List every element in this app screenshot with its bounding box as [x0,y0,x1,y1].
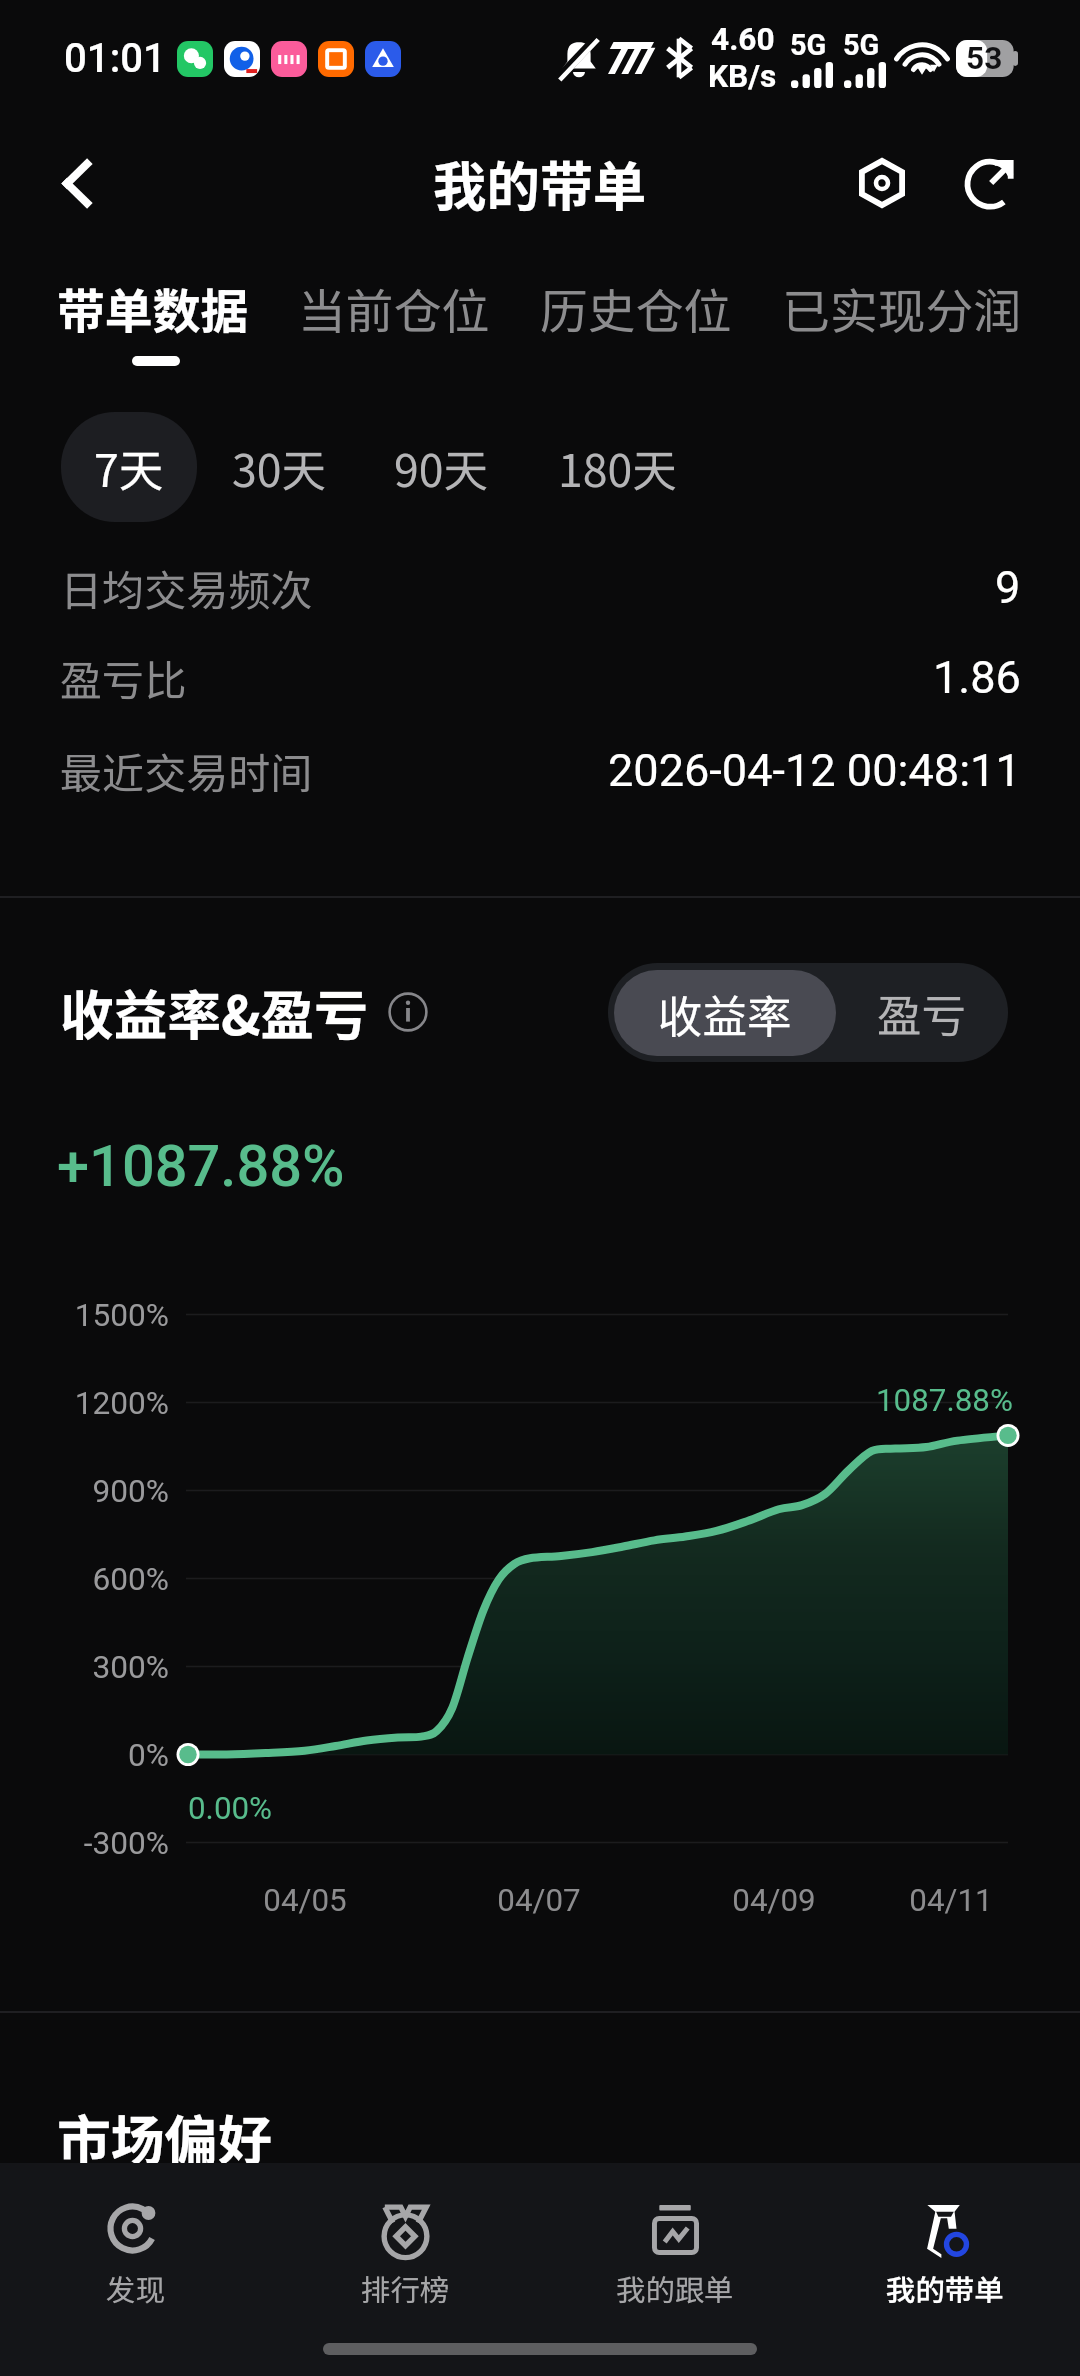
staticText: 日均交易频次 [60,557,313,618]
staticText: 180天 [558,435,677,500]
button[interactable]: 收益率 [614,970,836,1056]
button[interactable]: 盈亏 [836,963,1008,1062]
button[interactable]: 排行榜 [270,2163,540,2323]
staticText: 收益率&盈亏 [60,973,368,1051]
staticText: 1200% [74,1385,169,1422]
staticText: 600% [92,1561,169,1598]
staticText: 53 [966,40,1003,77]
button[interactable]: 我的跟单 [540,2163,810,2323]
staticText: 300% [92,1649,169,1686]
button[interactable]: 已实现分润 [782,265,1022,345]
staticText: 900% [92,1473,169,1510]
staticText: 盈亏 [877,980,967,1045]
button[interactable]: 历史仓位 [540,265,732,345]
staticText: 90天 [394,435,488,500]
button[interactable]: Settings [832,133,932,233]
staticText: 04/09 [732,1882,816,1919]
button[interactable]: 发现 [0,2163,270,2323]
button[interactable]: Back [27,133,127,233]
button[interactable]: 7天 [61,412,197,522]
staticText: 我的跟单 [616,2267,734,2310]
staticText: 1.86 [933,651,1021,704]
staticText: 30天 [232,435,326,500]
staticText: 排行榜 [361,2267,450,2310]
staticText: 当前仓位 [298,273,490,337]
button[interactable]: 30天 [213,412,345,522]
staticText: +1087.88% [57,1132,345,1200]
staticText: 我的带单 [886,2267,1004,2310]
button[interactable]: Share [940,133,1040,233]
staticText: 2026-04-12 00:48:11 [608,744,1021,797]
staticText: 01:01 [64,35,166,82]
staticText: 0.00% [188,1790,273,1827]
staticText: 已实现分润 [782,273,1022,337]
staticText: 收益率 [658,981,792,1046]
staticText: 历史仓位 [540,273,732,337]
staticText: 发现 [106,2267,165,2310]
staticText: 1500% [74,1297,169,1334]
staticText: 5G [790,28,827,62]
staticText: 04/05 [263,1882,347,1919]
button[interactable]: 180天 [540,412,694,522]
button[interactable]: 当前仓位 [298,265,490,345]
staticText: 4.60 [711,21,775,58]
staticText: 我的带单 [433,144,647,221]
button[interactable]: 我的带单 [810,2163,1080,2323]
staticText: 0% [128,1737,169,1774]
staticText: 04/07 [497,1882,581,1919]
staticText: 盈亏比 [60,647,187,708]
staticText: 1087.88% [876,1382,1013,1419]
staticText: 04/11 [909,1882,993,1919]
staticText: 7天 [94,435,164,500]
button[interactable]: 带单数据 [57,265,249,345]
staticText: 5G [843,28,880,62]
staticText: -300% [83,1825,169,1862]
button[interactable]: 90天 [375,412,507,522]
staticText: 带单数据 [57,273,249,337]
staticText: 最近交易时间 [60,740,313,801]
staticText: 市场偏好 [57,2098,272,2168]
staticText: KB/s [708,58,777,95]
staticText: 9 [995,561,1021,614]
